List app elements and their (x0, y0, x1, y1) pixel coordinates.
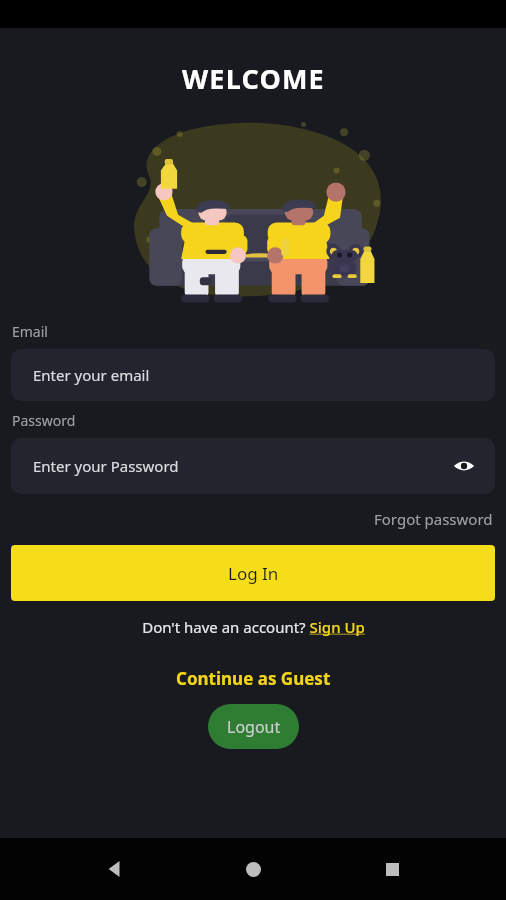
staticText: Log In (228, 562, 279, 585)
staticText: Password (12, 411, 76, 430)
button[interactable]: Log In (11, 545, 495, 601)
button[interactable]: Enter your email (11, 349, 495, 401)
button[interactable]: Continue as Guest (172, 663, 335, 694)
button[interactable]: Recent apps (368, 845, 416, 893)
staticText: Enter your Password (33, 456, 179, 476)
staticText: WELCOME (182, 60, 325, 97)
button[interactable]: Logout (208, 704, 299, 749)
staticText: Email (12, 322, 48, 341)
staticText: Don't have an account? Sign Up (142, 617, 365, 637)
staticText: Logout (227, 716, 281, 738)
button[interactable]: Home (229, 845, 277, 893)
button[interactable]: Forgot password (374, 507, 506, 531)
staticText: Forgot password (374, 509, 493, 529)
button[interactable]: Show password (447, 449, 481, 483)
button[interactable]: Enter your Password (11, 438, 495, 494)
button[interactable]: Don't have an account? Sign Up (138, 613, 369, 641)
staticText: Continue as Guest (176, 667, 331, 690)
button[interactable]: Back (91, 845, 139, 893)
staticText: Enter your email (33, 365, 150, 385)
